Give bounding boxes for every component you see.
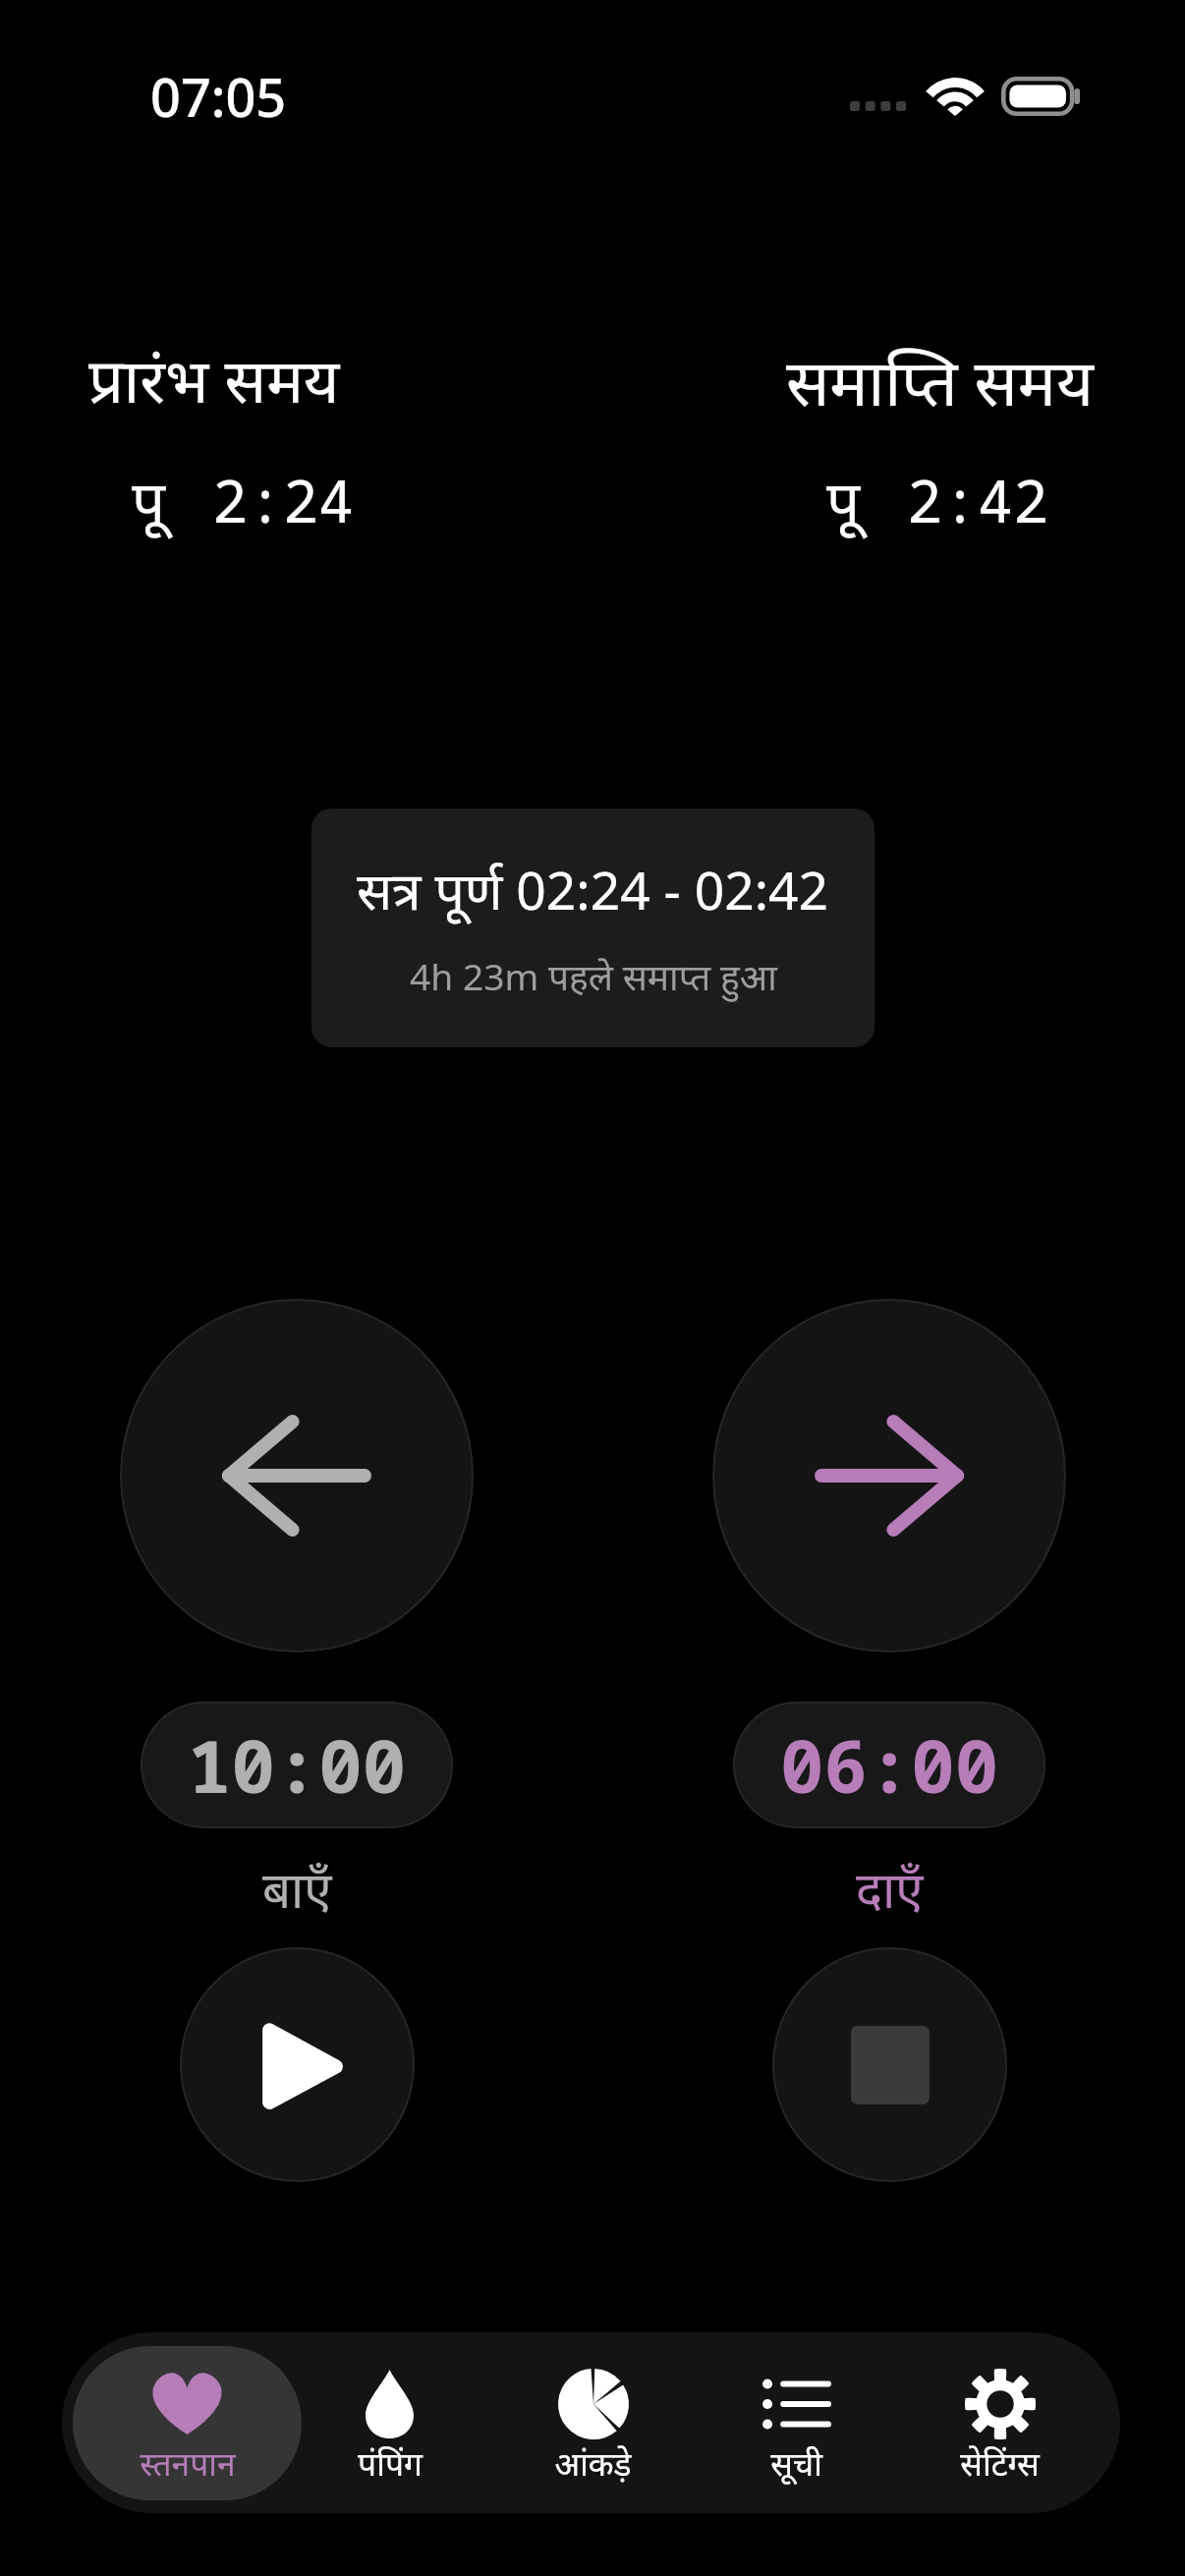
staticText: आंकड़े: [554, 2440, 632, 2486]
staticText: दाएँ: [856, 1854, 924, 1922]
button[interactable]: सेटिंग्स: [885, 2346, 1114, 2500]
staticText: 4h 23m पहले समाप्त हुआ: [410, 951, 777, 1001]
button[interactable]: 10:00: [141, 1702, 453, 1828]
staticText: सूची: [770, 2440, 822, 2486]
staticText: पू: [132, 460, 166, 540]
button[interactable]: सत्र पूर्ण 02:24 - 02:42: [311, 809, 875, 1047]
button[interactable]: आंकड़े: [479, 2346, 707, 2500]
staticText: 2:42: [907, 460, 1048, 540]
button[interactable]: Left breast: [120, 1299, 474, 1652]
button[interactable]: Right breast: [712, 1299, 1066, 1652]
staticText: पंपिंग: [358, 2440, 423, 2486]
staticText: 06:00: [780, 1715, 999, 1815]
staticText: 2:24: [212, 460, 354, 540]
button[interactable]: Start timer: [180, 1947, 415, 2182]
button[interactable]: पंपिंग: [275, 2346, 504, 2500]
staticText: 07:05: [150, 60, 287, 133]
staticText: समाप्ति समय: [786, 337, 1094, 424]
button[interactable]: Stop timer: [772, 1947, 1007, 2182]
staticText: बाएँ: [262, 1854, 332, 1922]
button[interactable]: सूची: [682, 2346, 911, 2500]
staticText: 10:00: [188, 1715, 407, 1815]
button[interactable]: 06:00: [733, 1702, 1045, 1828]
staticText: स्तनपान: [140, 2440, 236, 2486]
staticText: पू: [826, 460, 861, 540]
staticText: प्रारंभ समय: [88, 337, 340, 421]
staticText: सत्र पूर्ण 02:24 - 02:42: [357, 854, 829, 925]
staticText: सेटिंग्स: [960, 2440, 1040, 2486]
button[interactable]: स्तनपान: [73, 2346, 302, 2500]
